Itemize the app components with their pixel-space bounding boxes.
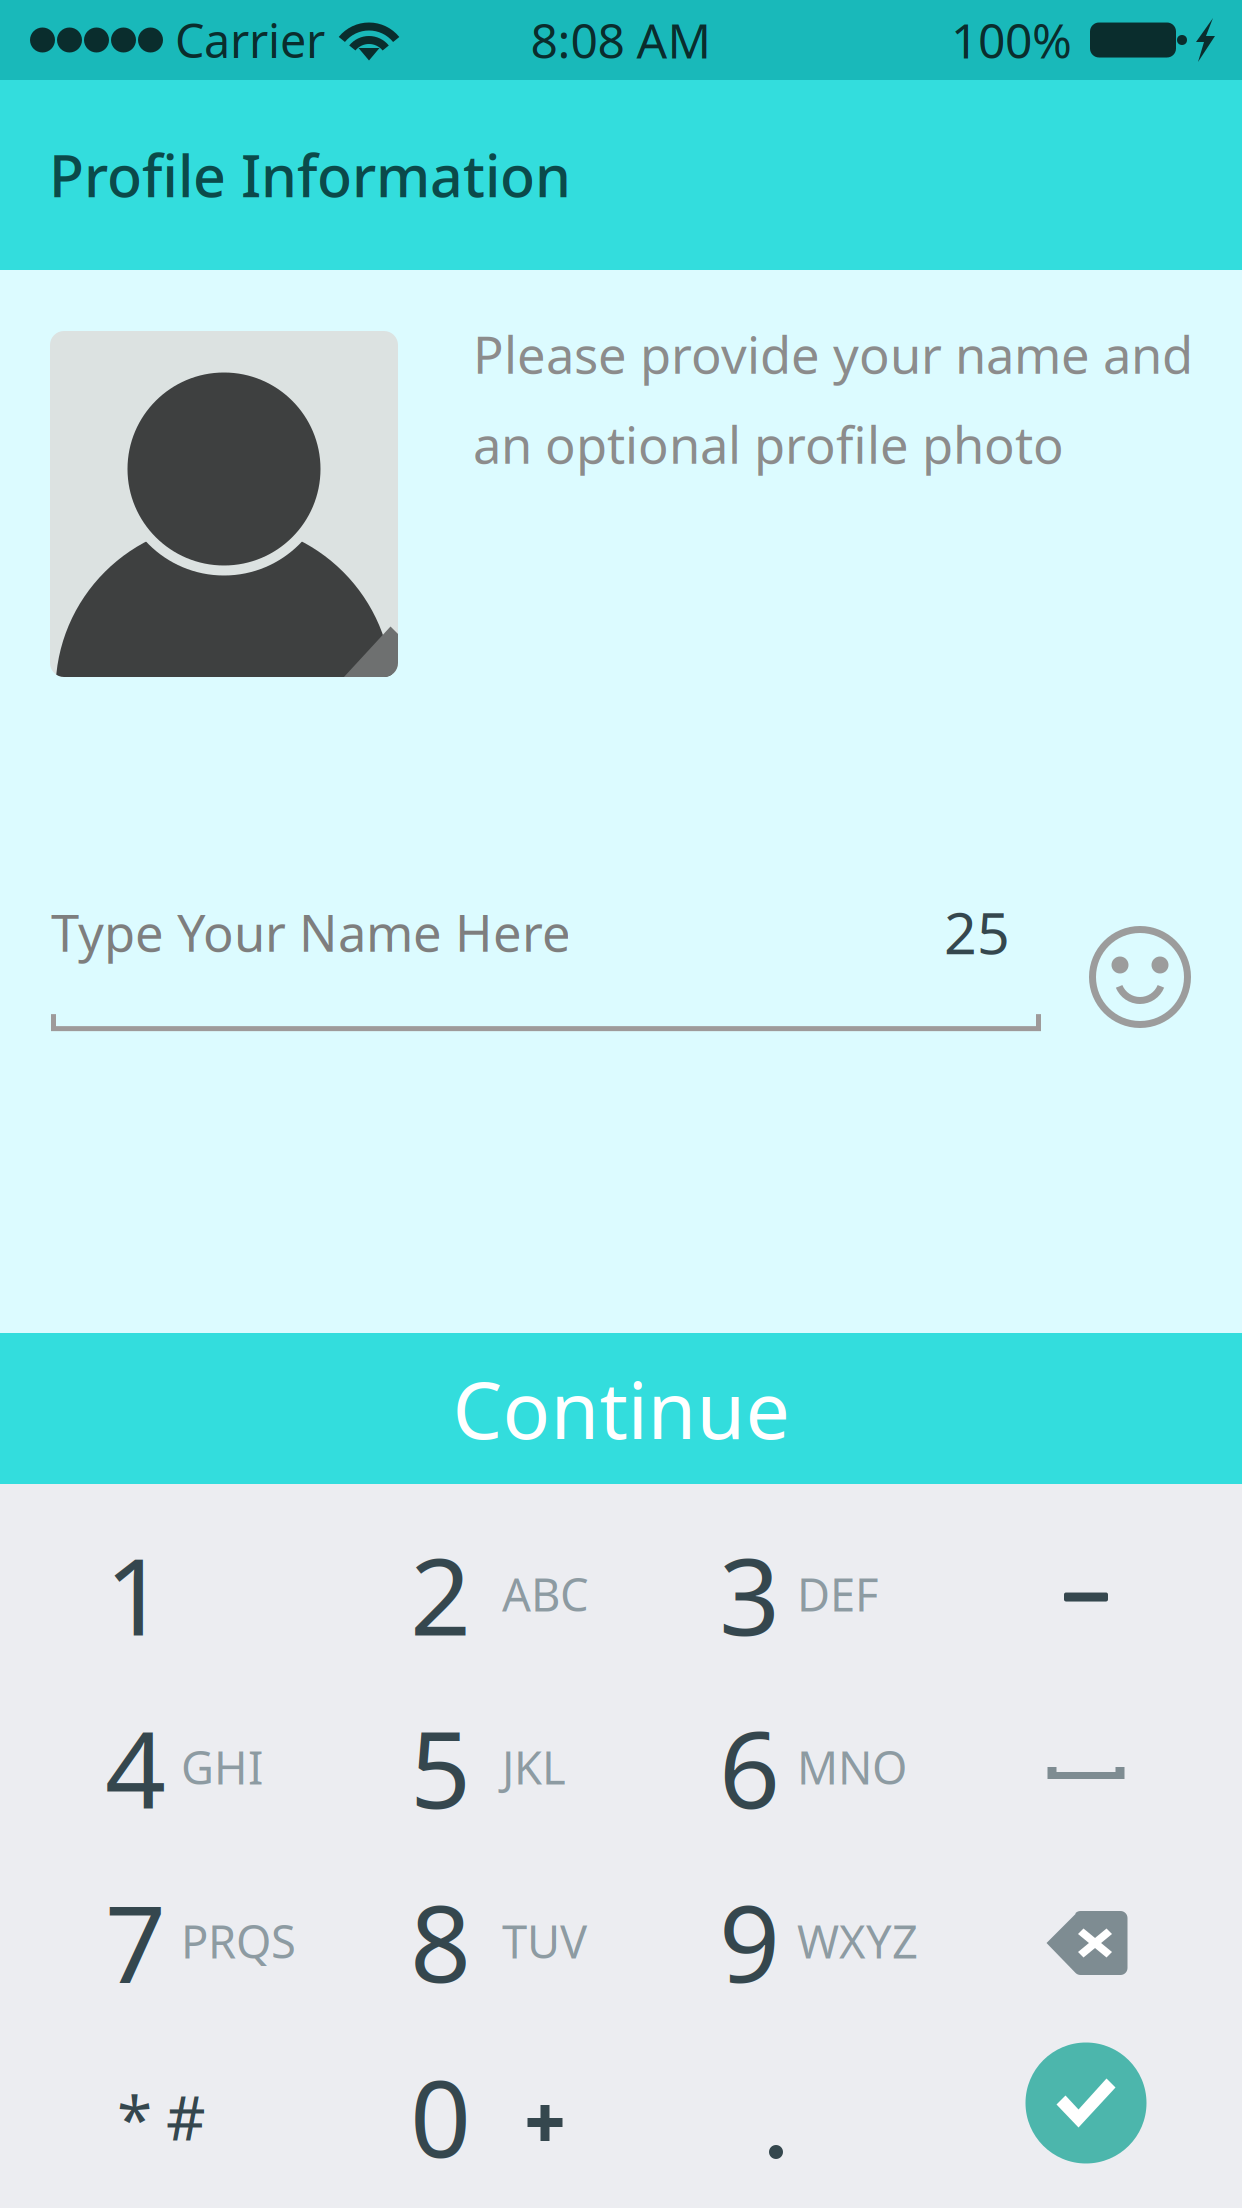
staticText: Profile Information <box>49 137 571 213</box>
button[interactable]: 9 <box>707 1854 1087 2028</box>
staticText: PRQS <box>181 1911 296 1971</box>
staticText: DEF <box>797 1564 879 1624</box>
staticText: 3 <box>719 1523 780 1665</box>
staticText: 100% <box>951 8 1072 72</box>
button[interactable]: 0 <box>398 2029 778 2203</box>
staticText: 2 <box>410 1523 471 1665</box>
staticText: 5 <box>410 1696 471 1838</box>
staticText: 9 <box>719 1870 780 2012</box>
staticText: 8:08 AM <box>530 8 711 72</box>
staticText: 8 <box>410 1870 471 2012</box>
button[interactable]: Delete <box>986 1856 1186 2030</box>
staticText: Carrier <box>175 9 325 71</box>
button[interactable]: 1 <box>93 1507 473 1681</box>
staticText: 0 <box>410 2045 471 2187</box>
staticText: 25 <box>944 894 1010 970</box>
button[interactable]: 3 <box>707 1507 1087 1681</box>
button[interactable]: Space <box>986 1686 1186 1860</box>
button[interactable]: 7 <box>93 1854 473 2028</box>
staticText: 1 <box>105 1523 166 1665</box>
button[interactable]: Plus <box>485 2063 605 2183</box>
staticText: MNO <box>797 1737 907 1797</box>
staticText: Please provide your name and <box>473 320 1193 388</box>
button[interactable]: 8 <box>398 1854 778 2028</box>
button[interactable]: 4 <box>93 1680 473 1854</box>
staticText: TUV <box>502 1911 587 1971</box>
button[interactable]: 6 <box>707 1680 1087 1854</box>
button[interactable]: 2 <box>398 1507 778 1681</box>
staticText: Type Your Name Here <box>51 898 571 966</box>
staticText: Continue <box>452 1356 789 1461</box>
button[interactable]: Emoji <box>1086 923 1194 1031</box>
button[interactable]: Period <box>701 2077 851 2208</box>
button[interactable]: Continue <box>0 1333 1242 1484</box>
button[interactable]: 5 <box>398 1680 778 1854</box>
button[interactable]: Dash <box>986 1510 1186 1684</box>
staticText: an optional profile photo <box>473 410 1064 478</box>
staticText: 7 <box>105 1870 166 2012</box>
staticText: # <box>166 2076 206 2157</box>
staticText: WXYZ <box>797 1911 918 1971</box>
button[interactable]: Done <box>986 2016 1186 2190</box>
staticText: GHI <box>181 1737 263 1797</box>
staticText: JKL <box>502 1737 566 1797</box>
button[interactable]: Choose profile photo <box>50 331 398 677</box>
staticText: ABC <box>502 1564 589 1624</box>
staticText: 6 <box>719 1696 780 1838</box>
staticText: * <box>117 2076 152 2161</box>
staticText: 4 <box>105 1696 166 1838</box>
button[interactable]: Star and hash <box>93 2029 473 2203</box>
